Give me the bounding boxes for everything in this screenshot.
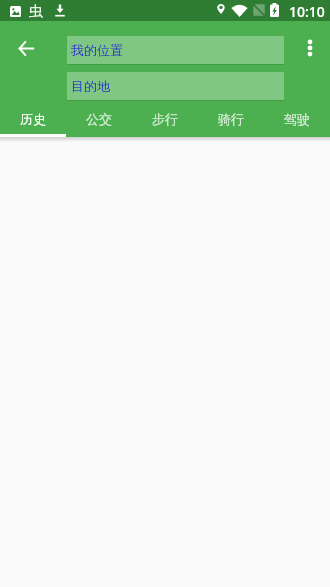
button[interactable]: 我的位置 — [67, 36, 284, 64]
button[interactable]: 步行 — [132, 106, 198, 137]
staticText: 10:10 — [289, 2, 325, 21]
staticText: 骑行 — [218, 111, 244, 127]
button[interactable]: 公交 — [66, 106, 132, 137]
button[interactable]: Back — [8, 30, 44, 66]
button[interactable]: 历史 — [0, 106, 66, 137]
staticText: 虫 — [29, 3, 43, 21]
staticText: 我的位置 — [71, 42, 123, 58]
staticText: 公交 — [86, 111, 112, 127]
button[interactable]: 驾驶 — [264, 106, 330, 137]
button[interactable]: More options — [292, 30, 328, 66]
staticText: 驾驶 — [284, 111, 310, 127]
staticText: 历史 — [20, 111, 46, 127]
staticText: 目的地 — [71, 78, 110, 94]
button[interactable]: 骑行 — [198, 106, 264, 137]
staticText: 步行 — [152, 111, 178, 127]
button[interactable]: 目的地 — [67, 72, 284, 100]
